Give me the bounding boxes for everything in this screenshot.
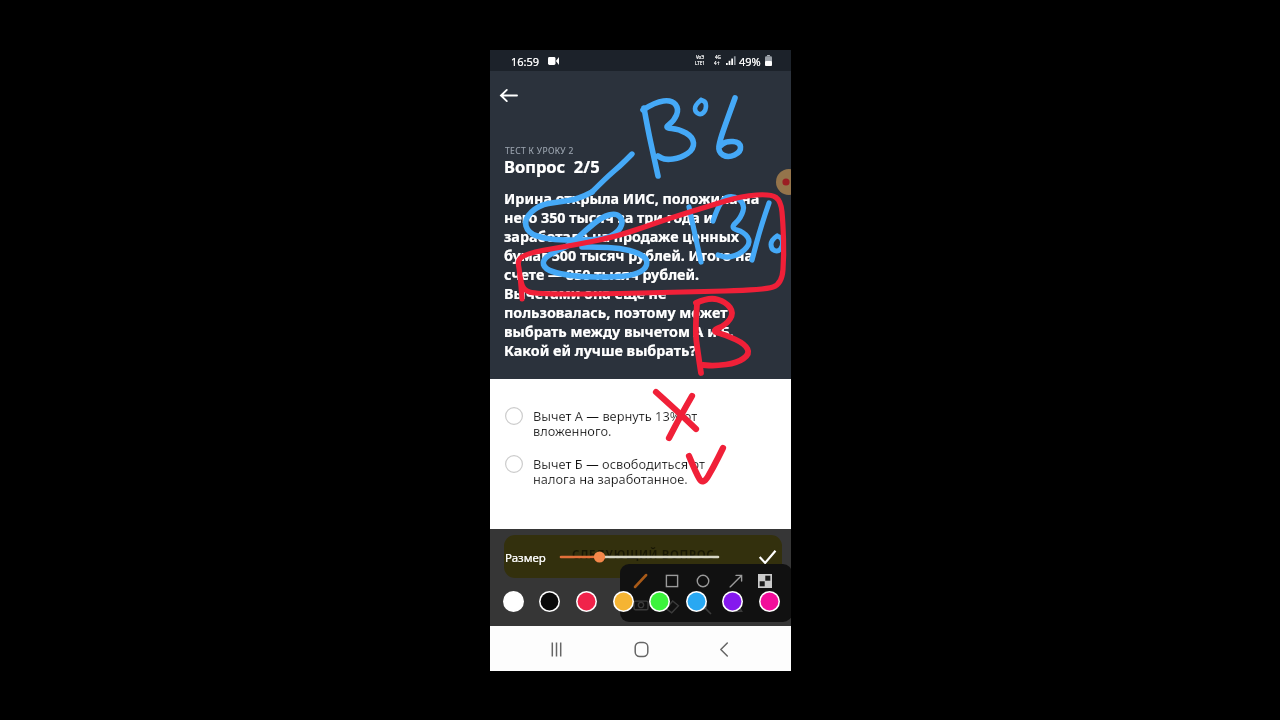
staticText: 49% [739,54,761,69]
button[interactable]: Pen [633,573,649,589]
button[interactable]: White pen colour [503,591,524,612]
button[interactable]: Done [755,545,779,569]
staticText: СЛЕДУЮЩИЙ ВОПРОС [572,547,715,563]
staticText: VoЭ [696,54,705,60]
button[interactable]: Red pen colour [576,591,597,612]
button[interactable]: Ellipse [695,573,711,589]
staticText: Вычет Б — освободиться от налога на зара… [533,455,729,488]
staticText: LTE1 [695,60,705,66]
button[interactable]: Blue pen colour [686,591,707,612]
button[interactable]: Pink pen colour [759,591,780,612]
button[interactable]: Recent apps [536,629,576,669]
button[interactable]: Green pen colour [649,591,670,612]
button[interactable]: СЛЕДУЮЩИЙ ВОПРОС [504,535,782,578]
button[interactable]: Brush size [560,550,718,564]
staticText: Размер [505,550,546,566]
button[interactable]: Вычет А — вернуть 13% от вложенного. [490,407,791,441]
button[interactable]: Back [494,81,522,109]
button[interactable]: Mosaic [757,573,773,589]
staticText: 16:59 [511,54,540,69]
staticText: Вычет А — вернуть 13% от вложенного. [533,407,729,440]
staticText: Вопрос 2/5 [504,155,600,177]
button[interactable]: Back [705,629,745,669]
button[interactable]: Rectangle [664,573,680,589]
button[interactable]: Purple pen colour [722,591,743,612]
button[interactable]: Home [621,629,661,669]
staticText: 4↑ [714,60,721,66]
staticText: Ирина открыла ИИС, положила на него 350 … [504,189,776,360]
button[interactable]: Orange pen colour [613,591,634,612]
button[interactable]: Black pen colour [539,591,560,612]
staticText: ТЕСТ К УРОКУ 2 [505,145,574,157]
button[interactable]: Вычет Б — освободиться от налога на зара… [490,455,791,489]
staticText: 4G [715,54,721,60]
button[interactable]: Arrow [728,573,744,589]
